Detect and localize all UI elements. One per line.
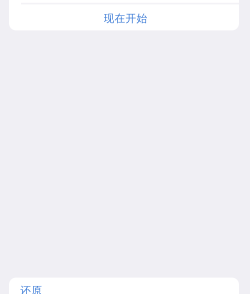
staticText: 还原	[20, 284, 42, 294]
button[interactable]: 还原	[9, 278, 239, 294]
button[interactable]: 现在开始	[9, 0, 239, 30]
staticText: 现在开始	[103, 12, 147, 25]
